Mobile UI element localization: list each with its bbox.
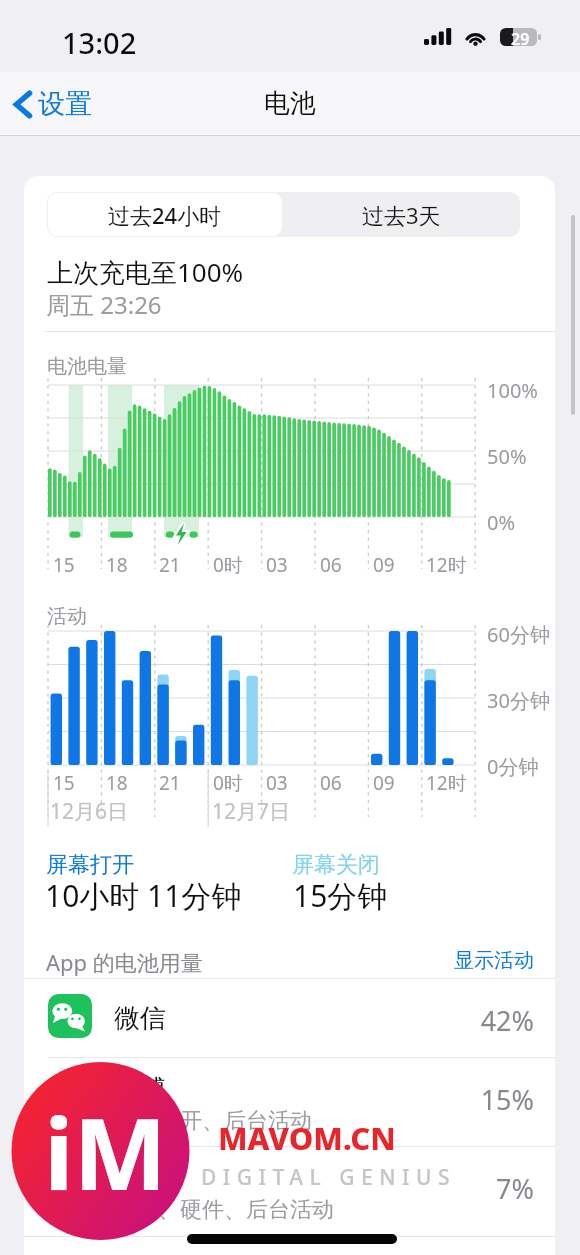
staticText: 12月7日 (212, 797, 291, 826)
staticText: 09 (373, 770, 395, 796)
staticText: 21 (159, 770, 181, 796)
staticText: 100% (487, 377, 538, 404)
staticText: 活动 (47, 604, 87, 629)
staticText: 屏幕打开、后台活动 (114, 1107, 312, 1135)
button[interactable]: 过去3天 (283, 192, 520, 237)
staticText: 60分钟 (487, 621, 550, 648)
staticText: 30分钟 (487, 687, 550, 714)
button[interactable]: 过去24小时 (48, 193, 282, 236)
staticText: 0时 (213, 770, 243, 796)
staticText: MAVOM.CN (218, 1117, 396, 1159)
staticText: 18 (106, 770, 128, 796)
staticText: DIGITAL GENIUS (201, 1163, 456, 1192)
staticText: 15% (434, 1081, 534, 1118)
staticText: 抖音 (114, 1162, 166, 1195)
staticText: 12时 (426, 770, 467, 796)
staticText: 电池 (264, 87, 316, 120)
button[interactable]: 显示活动 (448, 942, 540, 979)
staticText: 12月6日 (50, 797, 129, 826)
staticText: 周五 23:26 (46, 288, 162, 321)
staticText: 13:02 (62, 23, 137, 62)
staticText: 过去24小时 (108, 200, 222, 230)
staticText: 显示活动 (454, 948, 534, 973)
staticText: 06 (320, 770, 342, 796)
staticText: 15分钟 (293, 875, 388, 916)
staticText: 15 (53, 770, 75, 796)
button[interactable]: 设置 (8, 79, 98, 129)
staticText: 50% (487, 443, 527, 470)
button[interactable]: 微博 (24, 1057, 555, 1146)
staticText: 09 (373, 552, 395, 578)
staticText: 0% (487, 509, 516, 536)
staticText: 0时 (213, 552, 243, 578)
button[interactable]: 微信 (24, 978, 555, 1057)
staticText: 03 (266, 552, 288, 578)
staticText: 21 (159, 552, 181, 578)
staticText: App 的电池用量 (46, 947, 203, 977)
staticText: 微博 (114, 1073, 166, 1106)
staticText: 0分钟 (487, 753, 539, 780)
button[interactable]: 抖音 (24, 1146, 555, 1236)
staticText: 上次充电至100% (47, 254, 244, 290)
staticText: 03 (266, 770, 288, 796)
staticText: 屏幕关闭 (292, 851, 380, 879)
staticText: 电池电量 (47, 354, 127, 379)
staticText: 屏幕打开 (46, 851, 134, 879)
staticText: iM (44, 1084, 167, 1219)
staticText: 15 (53, 552, 75, 578)
staticText: 29 (511, 28, 530, 46)
staticText: 微信 (114, 1002, 166, 1035)
staticText: 设置 (38, 87, 92, 121)
staticText: 18 (106, 552, 128, 578)
staticText: 10小时 11分钟 (45, 875, 242, 916)
staticText: 42% (434, 1002, 534, 1039)
staticText: 通知、硬件、后台活动 (114, 1196, 334, 1224)
staticText: 过去3天 (362, 200, 441, 230)
staticText: 06 (320, 552, 342, 578)
staticText: 7% (434, 1170, 534, 1207)
staticText: 12时 (426, 552, 467, 578)
